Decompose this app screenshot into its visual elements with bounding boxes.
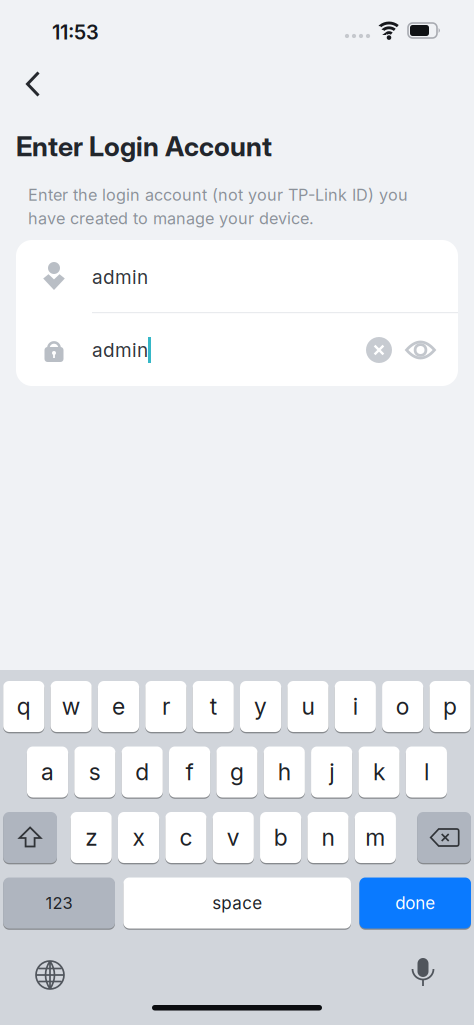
staticText: l xyxy=(424,758,429,786)
button[interactable]: i xyxy=(335,681,376,732)
button[interactable]: z xyxy=(71,812,112,863)
staticText: a xyxy=(41,758,54,786)
staticText: k xyxy=(373,758,385,786)
button[interactable]: v xyxy=(213,812,254,863)
staticText: r xyxy=(162,693,170,720)
button[interactable]: k xyxy=(358,746,400,797)
staticText: g xyxy=(230,758,244,786)
button[interactable] xyxy=(411,958,435,987)
button[interactable] xyxy=(14,67,58,101)
staticText: Enter the login account (not your TP-Lin… xyxy=(28,185,408,228)
button[interactable]: u xyxy=(287,681,329,732)
button[interactable]: j xyxy=(311,746,352,797)
button[interactable]: o xyxy=(382,681,423,732)
button[interactable]: a xyxy=(27,746,68,797)
staticText: s xyxy=(89,758,101,786)
button[interactable] xyxy=(35,960,65,990)
staticText: p xyxy=(443,693,457,720)
staticText: e xyxy=(112,693,125,720)
button[interactable]: 123 xyxy=(3,877,115,928)
staticText: 11:53 xyxy=(52,20,99,44)
staticText: j xyxy=(329,758,334,786)
button[interactable]: c xyxy=(165,812,206,863)
button[interactable]: space xyxy=(123,877,351,928)
button[interactable]: l xyxy=(406,746,447,797)
button[interactable]: p xyxy=(429,681,471,732)
button[interactable]: s xyxy=(74,746,115,797)
staticText: b xyxy=(274,824,288,851)
staticText: q xyxy=(17,693,31,720)
button[interactable]: y xyxy=(240,681,281,732)
button[interactable] xyxy=(366,337,392,363)
button[interactable]: r xyxy=(145,681,186,732)
staticText: m xyxy=(365,824,385,851)
staticText: admin xyxy=(92,338,148,361)
button[interactable]: t xyxy=(193,681,234,732)
button[interactable]: x xyxy=(118,812,159,863)
staticText: f xyxy=(186,758,194,786)
staticText: v xyxy=(227,824,240,851)
staticText: x xyxy=(133,824,145,851)
button[interactable]: admin xyxy=(92,257,452,297)
button[interactable]: h xyxy=(264,746,305,797)
button[interactable]: w xyxy=(51,681,92,732)
staticText: space xyxy=(212,893,262,913)
button[interactable]: e xyxy=(98,681,139,732)
button[interactable] xyxy=(405,340,436,360)
staticText: y xyxy=(254,693,267,720)
button[interactable]: done xyxy=(359,877,471,928)
staticText: c xyxy=(179,824,192,851)
staticText: h xyxy=(278,758,291,786)
button[interactable]: d xyxy=(122,746,163,797)
staticText: n xyxy=(321,824,334,851)
staticText: d xyxy=(135,758,149,786)
button[interactable]: n xyxy=(307,812,349,863)
staticText: i xyxy=(353,693,358,720)
staticText: o xyxy=(396,693,410,720)
button[interactable]: f xyxy=(169,746,210,797)
button[interactable]: b xyxy=(260,812,301,863)
staticText: admin xyxy=(92,265,148,288)
staticText: done xyxy=(395,893,435,913)
button[interactable] xyxy=(3,812,57,863)
button[interactable] xyxy=(417,812,471,863)
button[interactable]: g xyxy=(216,746,257,797)
staticText: u xyxy=(301,693,314,720)
button[interactable]: m xyxy=(355,812,396,863)
staticText: Enter Login Account xyxy=(16,130,272,163)
staticText: t xyxy=(210,693,217,720)
button[interactable]: q xyxy=(3,681,44,732)
button[interactable]: admin xyxy=(92,330,352,370)
staticText: z xyxy=(85,824,97,851)
staticText: w xyxy=(62,693,81,720)
staticText: 123 xyxy=(46,893,73,913)
